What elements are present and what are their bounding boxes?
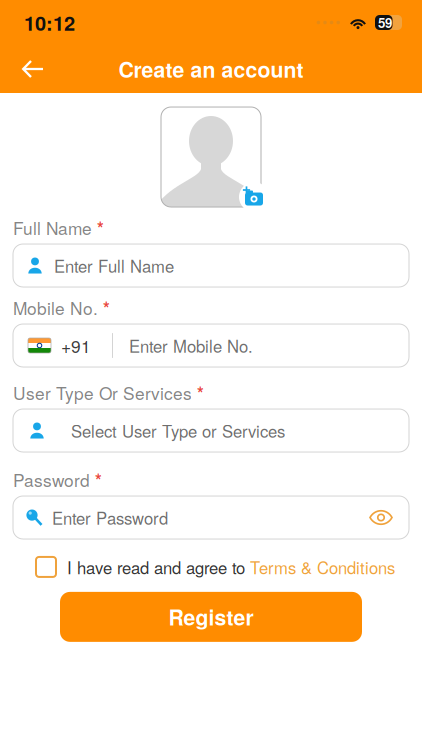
staticText: I have read and agree to	[67, 555, 245, 579]
button[interactable]: Show password	[361, 499, 401, 535]
staticText: Terms & Conditions	[250, 555, 395, 579]
staticText: +91	[61, 333, 91, 358]
staticText: Register	[168, 602, 253, 632]
staticText: Enter Full Name	[54, 254, 174, 277]
staticText: *	[90, 467, 102, 492]
staticText: Full Name	[13, 215, 92, 240]
staticText: 59	[378, 13, 392, 32]
staticText: Select User Type or Services	[71, 419, 285, 442]
staticText: Password	[13, 467, 90, 492]
staticText: User Type Or Services	[13, 380, 192, 405]
staticText: *	[92, 215, 104, 240]
staticText: Mobile No.	[13, 295, 98, 320]
staticText: *	[98, 295, 110, 320]
staticText: Enter Mobile No.	[129, 334, 253, 357]
button[interactable]: Agree to terms and conditions	[36, 557, 56, 577]
button[interactable]: Register	[60, 592, 362, 642]
staticText: Enter Password	[52, 506, 168, 529]
staticText: 10:12	[24, 8, 75, 37]
button[interactable]: Terms & Conditions	[245, 555, 395, 579]
staticText: Create an account	[118, 54, 303, 84]
button[interactable]: Add profile photo	[161, 107, 261, 207]
button[interactable]: Back	[9, 48, 57, 90]
staticText: *	[192, 380, 204, 405]
